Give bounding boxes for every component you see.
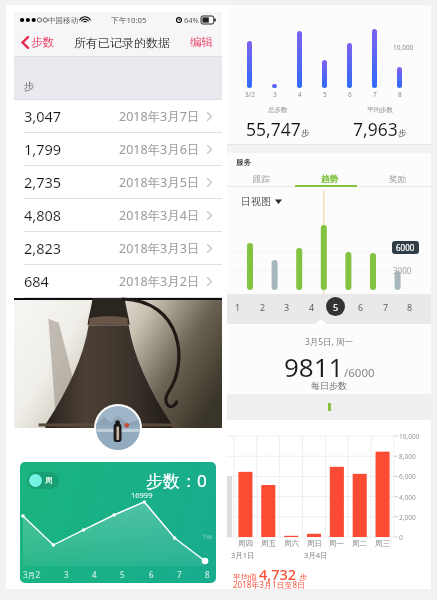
staticText: 0 [399, 533, 403, 542]
button[interactable]: 日视图 [239, 193, 284, 210]
staticText: 下午10:05 [111, 15, 147, 26]
staticText: 周四 [238, 539, 253, 548]
staticText: 2,823 [24, 238, 62, 258]
staticText: 3 [64, 569, 69, 580]
staticText: 2018年3月2日 [119, 273, 200, 290]
staticText: 中国移动 [48, 16, 78, 25]
staticText: 步 [301, 128, 310, 139]
staticText: 4,000 [399, 493, 416, 502]
staticText: 7 [373, 90, 377, 99]
staticText: 3月2 [23, 569, 41, 580]
staticText: 2018年3月7日 [119, 108, 200, 125]
staticText: 3月4日 [304, 550, 328, 560]
staticText: 周二 [352, 539, 367, 548]
staticText: 2018年3月5日 [119, 174, 200, 191]
staticText: 684 [24, 271, 49, 291]
staticText: 2018年3月4日 [119, 207, 200, 224]
staticText: 2 [260, 301, 266, 313]
staticText: 2,000 [399, 513, 416, 522]
staticText: 3月5日, 周一 [227, 336, 431, 348]
staticText: 7 [383, 301, 389, 313]
button[interactable]: 周 [27, 472, 59, 489]
button[interactable]: 6 [351, 297, 370, 316]
button[interactable]: 1,799 [14, 133, 222, 165]
staticText: 步 [299, 572, 307, 582]
staticText: 10,000 [399, 432, 420, 441]
staticText: 周三 [375, 539, 390, 548]
button[interactable]: 2,735 [14, 166, 222, 198]
staticText: 5 [120, 569, 125, 580]
staticText: 4,808 [24, 205, 62, 225]
staticText: 3 [273, 90, 277, 99]
staticText: 4 [309, 301, 315, 313]
button[interactable]: 4 [302, 297, 321, 316]
button[interactable]: 1 [228, 297, 247, 316]
staticText: 6 [348, 90, 352, 99]
button[interactable]: 7 [376, 297, 395, 316]
staticText: 步 [24, 80, 35, 93]
staticText: 编辑 [190, 35, 213, 49]
staticText: 8 [398, 90, 402, 99]
button[interactable]: Profile avatar [96, 406, 140, 450]
staticText: 55,747 [246, 117, 301, 141]
button[interactable]: 跟踪 [227, 171, 295, 187]
staticText: 8,000 [399, 452, 416, 461]
staticText: 6 [358, 301, 364, 313]
staticText: 2018年3月3日 [119, 240, 200, 257]
button[interactable]: 2,823 [14, 232, 222, 264]
button[interactable]: 趋势 [295, 171, 363, 187]
staticText: 1w [202, 531, 213, 541]
staticText: 10,000 [393, 43, 414, 52]
staticText: 1,799 [24, 139, 62, 159]
button[interactable]: 3,047 [14, 100, 222, 132]
staticText: 2018年3月6日 [119, 141, 200, 158]
staticText: 日视图 [241, 195, 271, 208]
staticText: 周日 [307, 539, 322, 548]
staticText: 3月1日 [231, 550, 255, 560]
button[interactable]: 4,808 [14, 199, 222, 231]
staticText: 平均值 [233, 572, 257, 582]
staticText: 6 [149, 569, 154, 580]
button[interactable]: 3 [277, 297, 296, 316]
button[interactable]: 奖励 [363, 171, 431, 187]
staticText: 7,963 [353, 117, 398, 141]
staticText: 6000 [396, 242, 415, 253]
staticText: 8 [407, 301, 413, 313]
staticText: 服务 [236, 158, 251, 167]
staticText: 跟踪 [253, 174, 270, 185]
staticText: 总步数 [268, 106, 288, 114]
button[interactable]: 684 [14, 265, 222, 297]
staticText: 64% [184, 15, 199, 25]
staticText: 步数 [31, 35, 54, 49]
staticText: 趋势 [321, 174, 338, 185]
staticText: 3,047 [24, 106, 62, 126]
staticText: 9811 [284, 349, 344, 384]
staticText: 1 [235, 301, 241, 313]
staticText: 3 [284, 301, 290, 313]
staticText: 3000 [393, 265, 412, 276]
staticText: /6000 [344, 365, 375, 381]
staticText: 8 [205, 569, 210, 580]
staticText: 奖励 [389, 174, 406, 185]
staticText: 4 [298, 90, 302, 99]
staticText: 周五 [261, 539, 276, 548]
staticText: 周六 [284, 539, 299, 548]
staticText: 16999 [131, 490, 153, 500]
button[interactable]: 2 [253, 297, 272, 316]
staticText: 6,000 [399, 472, 416, 481]
staticText: 5 [333, 301, 339, 313]
staticText: 2,735 [24, 172, 62, 192]
button[interactable]: 编辑 [188, 32, 215, 52]
staticText: 4 [92, 569, 97, 580]
button[interactable]: 8 [400, 297, 419, 316]
staticText: 步数：0 [146, 469, 207, 492]
staticText: 周一 [329, 539, 344, 548]
button[interactable]: 步数 [19, 32, 56, 52]
button[interactable]: 5 [326, 297, 345, 316]
staticText: 2018年3月1日至8日 [233, 579, 306, 590]
staticText: 周 [45, 476, 53, 485]
staticText: 每日步数 [227, 380, 431, 391]
staticText: 5 [323, 90, 327, 99]
staticText: 所有已记录的数据 [74, 35, 170, 50]
staticText: 4,732 [259, 564, 297, 584]
